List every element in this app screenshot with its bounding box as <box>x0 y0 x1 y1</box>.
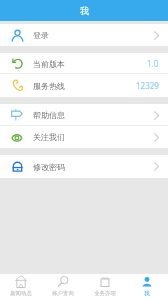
staticText: 修改密码 <box>33 162 65 172</box>
staticText: 我 <box>144 290 150 297</box>
button[interactable]: 我 <box>126 274 168 300</box>
button[interactable]: 帮助信息 <box>0 104 168 126</box>
button[interactable]: 当前版本 <box>0 53 168 74</box>
staticText: 12329 <box>136 80 159 91</box>
button[interactable]: 业务办理 <box>84 274 126 300</box>
staticText: 当前版本 <box>33 59 65 69</box>
button[interactable]: 关注我们 <box>0 126 168 148</box>
button[interactable]: 新闻动态 <box>0 274 42 300</box>
button[interactable]: 服务热线 <box>0 74 168 97</box>
staticText: 我 <box>80 5 89 16</box>
staticText: 帮助信息 <box>33 110 65 120</box>
staticText: 账户查询 <box>52 290 74 297</box>
staticText: 服务热线 <box>33 81 65 91</box>
button[interactable]: 账户查询 <box>42 274 84 300</box>
button[interactable]: 修改密码 <box>0 155 168 178</box>
staticText: 登录 <box>33 30 49 40</box>
button[interactable]: 登录 <box>0 24 168 46</box>
staticText: 1.0 <box>147 58 159 69</box>
staticText: 关注我们 <box>33 132 65 142</box>
staticText: 新闻动态 <box>10 290 32 297</box>
staticText: 业务办理 <box>94 290 116 297</box>
